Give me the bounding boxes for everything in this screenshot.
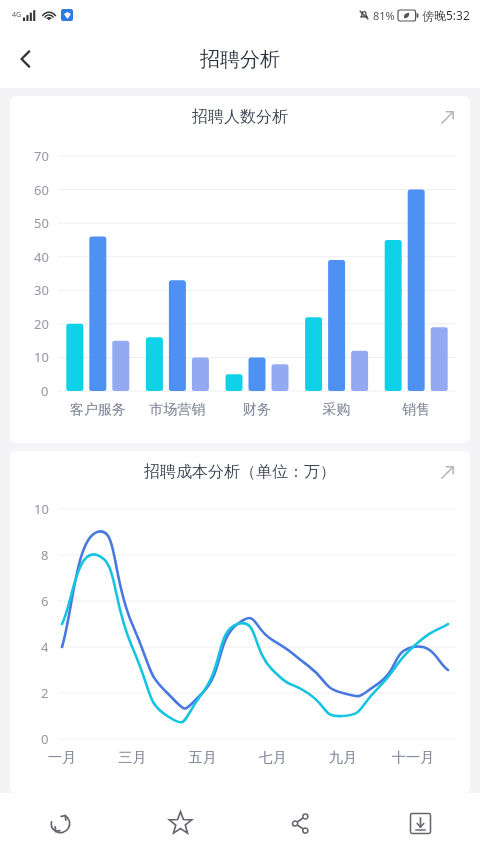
button[interactable]: Expand chart	[430, 455, 464, 489]
staticText: 81%	[373, 8, 395, 23]
staticText: 招聘分析	[200, 47, 280, 72]
button[interactable]: Share	[240, 793, 360, 853]
staticText: 招聘人数分析	[192, 107, 288, 127]
button[interactable]: Download	[360, 793, 480, 853]
button[interactable]: Back	[0, 33, 52, 85]
staticText: 招聘成本分析（单位：万）	[144, 462, 336, 482]
staticText: 4G	[12, 10, 22, 20]
button[interactable]: Refresh	[0, 793, 120, 853]
staticText: 傍晚5:32	[422, 7, 470, 23]
button[interactable]: Expand chart	[430, 100, 464, 134]
button[interactable]: Favorite	[120, 793, 240, 853]
